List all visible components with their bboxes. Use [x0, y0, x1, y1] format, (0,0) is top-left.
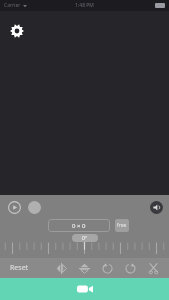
button[interactable]: Flip horizontal — [53, 260, 69, 276]
button[interactable]: Playhead — [28, 201, 41, 214]
staticText: 0° — [82, 235, 88, 242]
button[interactable]: Mute — [150, 201, 163, 214]
button[interactable]: Flip vertical — [76, 260, 92, 276]
button[interactable]: Record video — [0, 278, 169, 300]
staticText: 0 × 0 — [72, 222, 86, 230]
staticText: Reset — [10, 263, 29, 273]
button[interactable]: Play — [6, 199, 22, 215]
staticText: free — [117, 222, 127, 229]
button[interactable]: Settings — [7, 21, 27, 41]
button[interactable]: 0° — [72, 234, 98, 242]
button[interactable]: 0 × 0 — [48, 219, 110, 232]
staticText: Carrier — [4, 2, 21, 9]
button[interactable]: free — [115, 219, 129, 232]
button[interactable]: Trim — [145, 260, 161, 276]
button[interactable]: Rotate right — [122, 260, 138, 276]
button[interactable]: Rotate left — [99, 260, 115, 276]
staticText: 1:48 PM — [75, 2, 94, 9]
button[interactable]: Reset — [6, 260, 33, 276]
